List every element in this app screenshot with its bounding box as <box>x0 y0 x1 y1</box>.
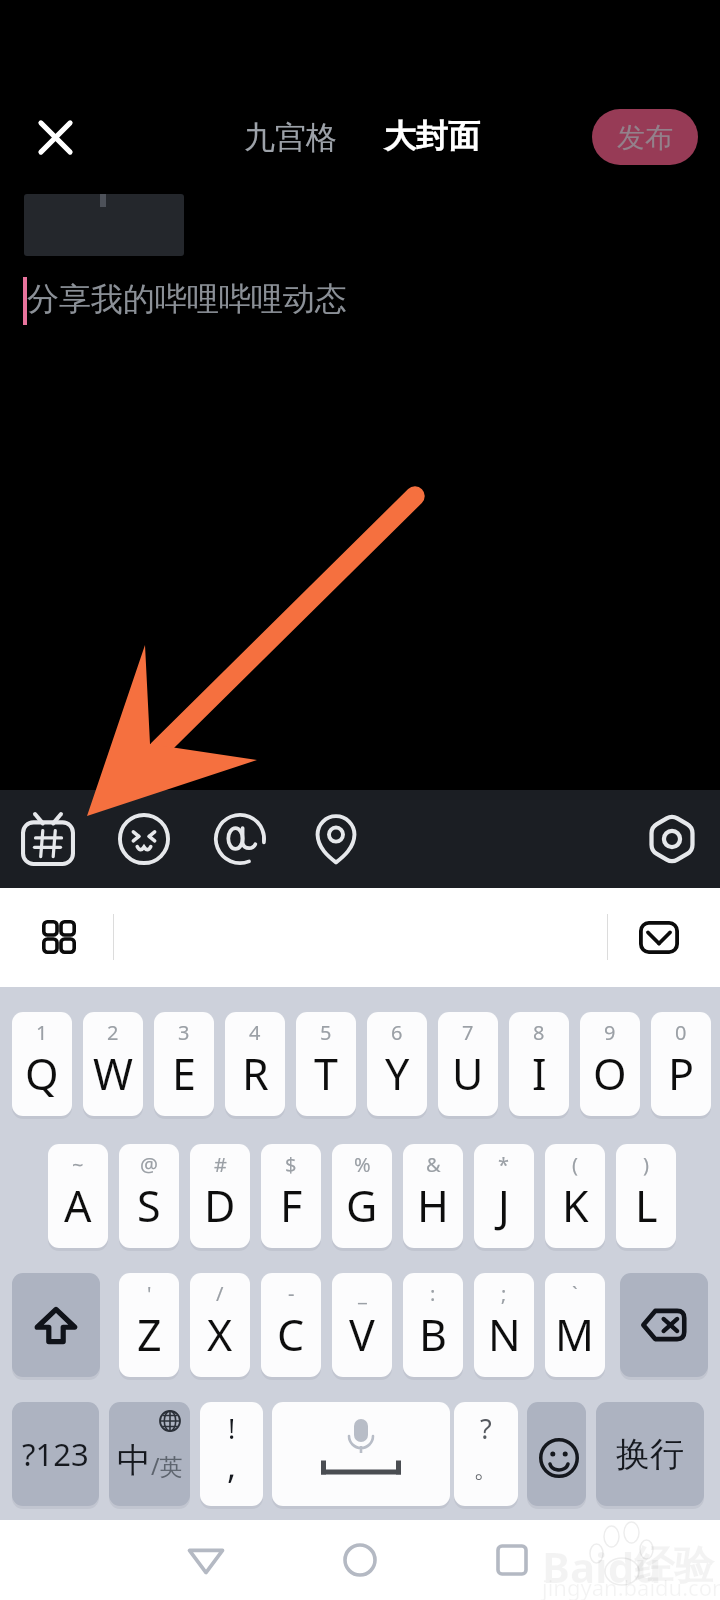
button[interactable]: Shift <box>12 1273 100 1377</box>
button[interactable]: @ <box>119 1144 179 1248</box>
staticText: / <box>216 1280 224 1307</box>
staticText: $ <box>285 1151 297 1178</box>
staticText: ?123 <box>22 1433 89 1475</box>
button[interactable]: ~ <box>48 1144 108 1248</box>
button[interactable]: Backspace <box>620 1273 708 1377</box>
button[interactable]: Location <box>296 799 376 879</box>
staticText: A <box>64 1176 92 1235</box>
staticText: V <box>349 1305 375 1364</box>
button[interactable]: Emoji <box>104 799 184 879</box>
button[interactable]: ' <box>119 1273 179 1377</box>
button[interactable]: $ <box>261 1144 321 1248</box>
button[interactable]: ; <box>474 1273 534 1377</box>
button[interactable]: 发布 <box>592 109 698 165</box>
button[interactable]: & <box>403 1144 463 1248</box>
staticText: I <box>532 1044 547 1103</box>
staticText: U <box>452 1044 484 1103</box>
staticText: : <box>430 1280 436 1307</box>
button[interactable]: Topic <box>8 799 88 879</box>
staticText: 经验 <box>634 1540 714 1590</box>
staticText: L <box>635 1176 658 1235</box>
staticText: @ <box>140 1151 158 1178</box>
staticText: H <box>417 1176 449 1235</box>
button[interactable]: : <box>403 1273 463 1377</box>
button[interactable]: Emoji <box>527 1402 586 1506</box>
button[interactable]: Cover image <box>24 194 184 256</box>
staticText: ! <box>228 1410 236 1447</box>
staticText: S <box>137 1176 161 1235</box>
button[interactable]: Mention <box>200 799 280 879</box>
button[interactable]: 中 <box>109 1402 190 1506</box>
staticText: 换行 <box>616 1433 684 1476</box>
button[interactable]: 换行 <box>596 1402 704 1506</box>
staticText: 0 <box>675 1019 687 1046</box>
button[interactable]: 九宫格 <box>232 108 349 167</box>
staticText: , <box>227 1443 237 1489</box>
staticText: B <box>419 1305 447 1364</box>
button[interactable]: 6 <box>367 1012 427 1116</box>
button[interactable]: 8 <box>509 1012 569 1116</box>
button[interactable]: 5 <box>296 1012 356 1116</box>
button[interactable]: Close <box>23 105 88 170</box>
button[interactable]: Hide keyboard <box>627 911 691 963</box>
staticText: ; <box>501 1280 507 1307</box>
button[interactable]: ` <box>545 1273 605 1377</box>
button[interactable]: Keyboard layouts <box>26 904 92 970</box>
button[interactable]: 2 <box>83 1012 143 1116</box>
staticText: ? <box>480 1410 492 1447</box>
staticText: ~ <box>72 1151 84 1178</box>
staticText: 8 <box>533 1019 545 1046</box>
button[interactable]: ?123 <box>12 1402 99 1506</box>
button[interactable]: / <box>190 1273 250 1377</box>
button[interactable]: Home <box>326 1526 394 1594</box>
button[interactable]: 7 <box>438 1012 498 1116</box>
staticText: N <box>488 1305 521 1364</box>
staticText: Baidu <box>542 1538 662 1595</box>
button[interactable]: ! <box>200 1402 263 1506</box>
button[interactable]: # <box>190 1144 250 1248</box>
button[interactable]: ) <box>616 1144 676 1248</box>
staticText: R <box>242 1044 269 1103</box>
staticText: 。 <box>473 1452 499 1485</box>
staticText: T <box>314 1044 338 1103</box>
staticText: K <box>562 1176 589 1235</box>
staticText: C <box>277 1305 305 1364</box>
button[interactable]: 1 <box>12 1012 72 1116</box>
button[interactable]: 0 <box>651 1012 711 1116</box>
staticText: ( <box>572 1151 578 1178</box>
button[interactable]: ( <box>545 1144 605 1248</box>
button[interactable]: ? <box>454 1402 518 1506</box>
staticText: W <box>93 1044 133 1103</box>
staticText: 7 <box>462 1019 474 1046</box>
staticText: ) <box>643 1151 649 1178</box>
button[interactable]: 9 <box>580 1012 640 1116</box>
button[interactable]: Back <box>172 1526 240 1594</box>
staticText: 6 <box>391 1019 403 1046</box>
staticText: Y <box>385 1044 410 1103</box>
button[interactable]: Recents <box>478 1526 546 1594</box>
button[interactable]: 大封面 <box>372 106 492 166</box>
staticText: 4 <box>249 1019 261 1046</box>
staticText: 大封面 <box>384 116 480 156</box>
staticText: 发布 <box>617 120 673 155</box>
staticText: J <box>498 1176 510 1235</box>
staticText: * <box>498 1151 510 1178</box>
staticText: ' <box>147 1280 152 1307</box>
button[interactable]: % <box>332 1144 392 1248</box>
staticText: X <box>207 1305 233 1364</box>
button[interactable]: - <box>261 1273 321 1377</box>
staticText: 1 <box>36 1019 48 1046</box>
button[interactable]: Space <box>272 1402 450 1506</box>
staticText: Q <box>25 1044 59 1103</box>
button[interactable]: Settings <box>632 799 712 879</box>
button[interactable]: 4 <box>225 1012 285 1116</box>
staticText: D <box>204 1176 236 1235</box>
staticText: M <box>555 1305 595 1364</box>
staticText: & <box>426 1151 441 1178</box>
staticText: 2 <box>107 1019 119 1046</box>
button[interactable]: _ <box>332 1273 392 1377</box>
button[interactable]: 3 <box>154 1012 214 1116</box>
staticText: 9 <box>604 1019 616 1046</box>
button[interactable]: * <box>474 1144 534 1248</box>
staticText: O <box>593 1044 627 1103</box>
